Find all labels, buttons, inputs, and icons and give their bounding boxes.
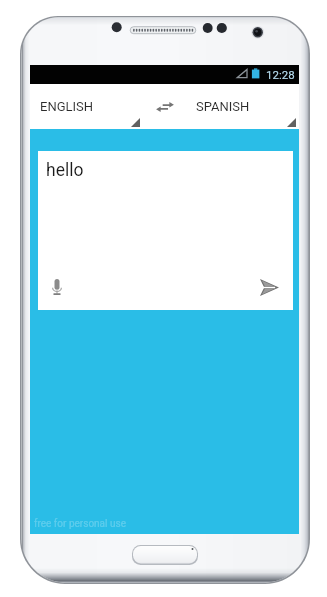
staticText: hello: [46, 160, 84, 181]
button[interactable]: SPANISH: [186, 84, 299, 129]
button[interactable]: ENGLISH: [30, 84, 143, 129]
staticText: SPANISH: [196, 99, 250, 114]
staticText: free for personal use: [34, 518, 126, 530]
button[interactable]: Swap languages: [143, 84, 186, 129]
button[interactable]: Home: [132, 545, 198, 565]
staticText: 12:28: [266, 68, 295, 81]
button[interactable]: Translate: [256, 274, 283, 301]
staticText: ENGLISH: [40, 99, 94, 114]
button[interactable]: Voice input: [44, 274, 70, 300]
